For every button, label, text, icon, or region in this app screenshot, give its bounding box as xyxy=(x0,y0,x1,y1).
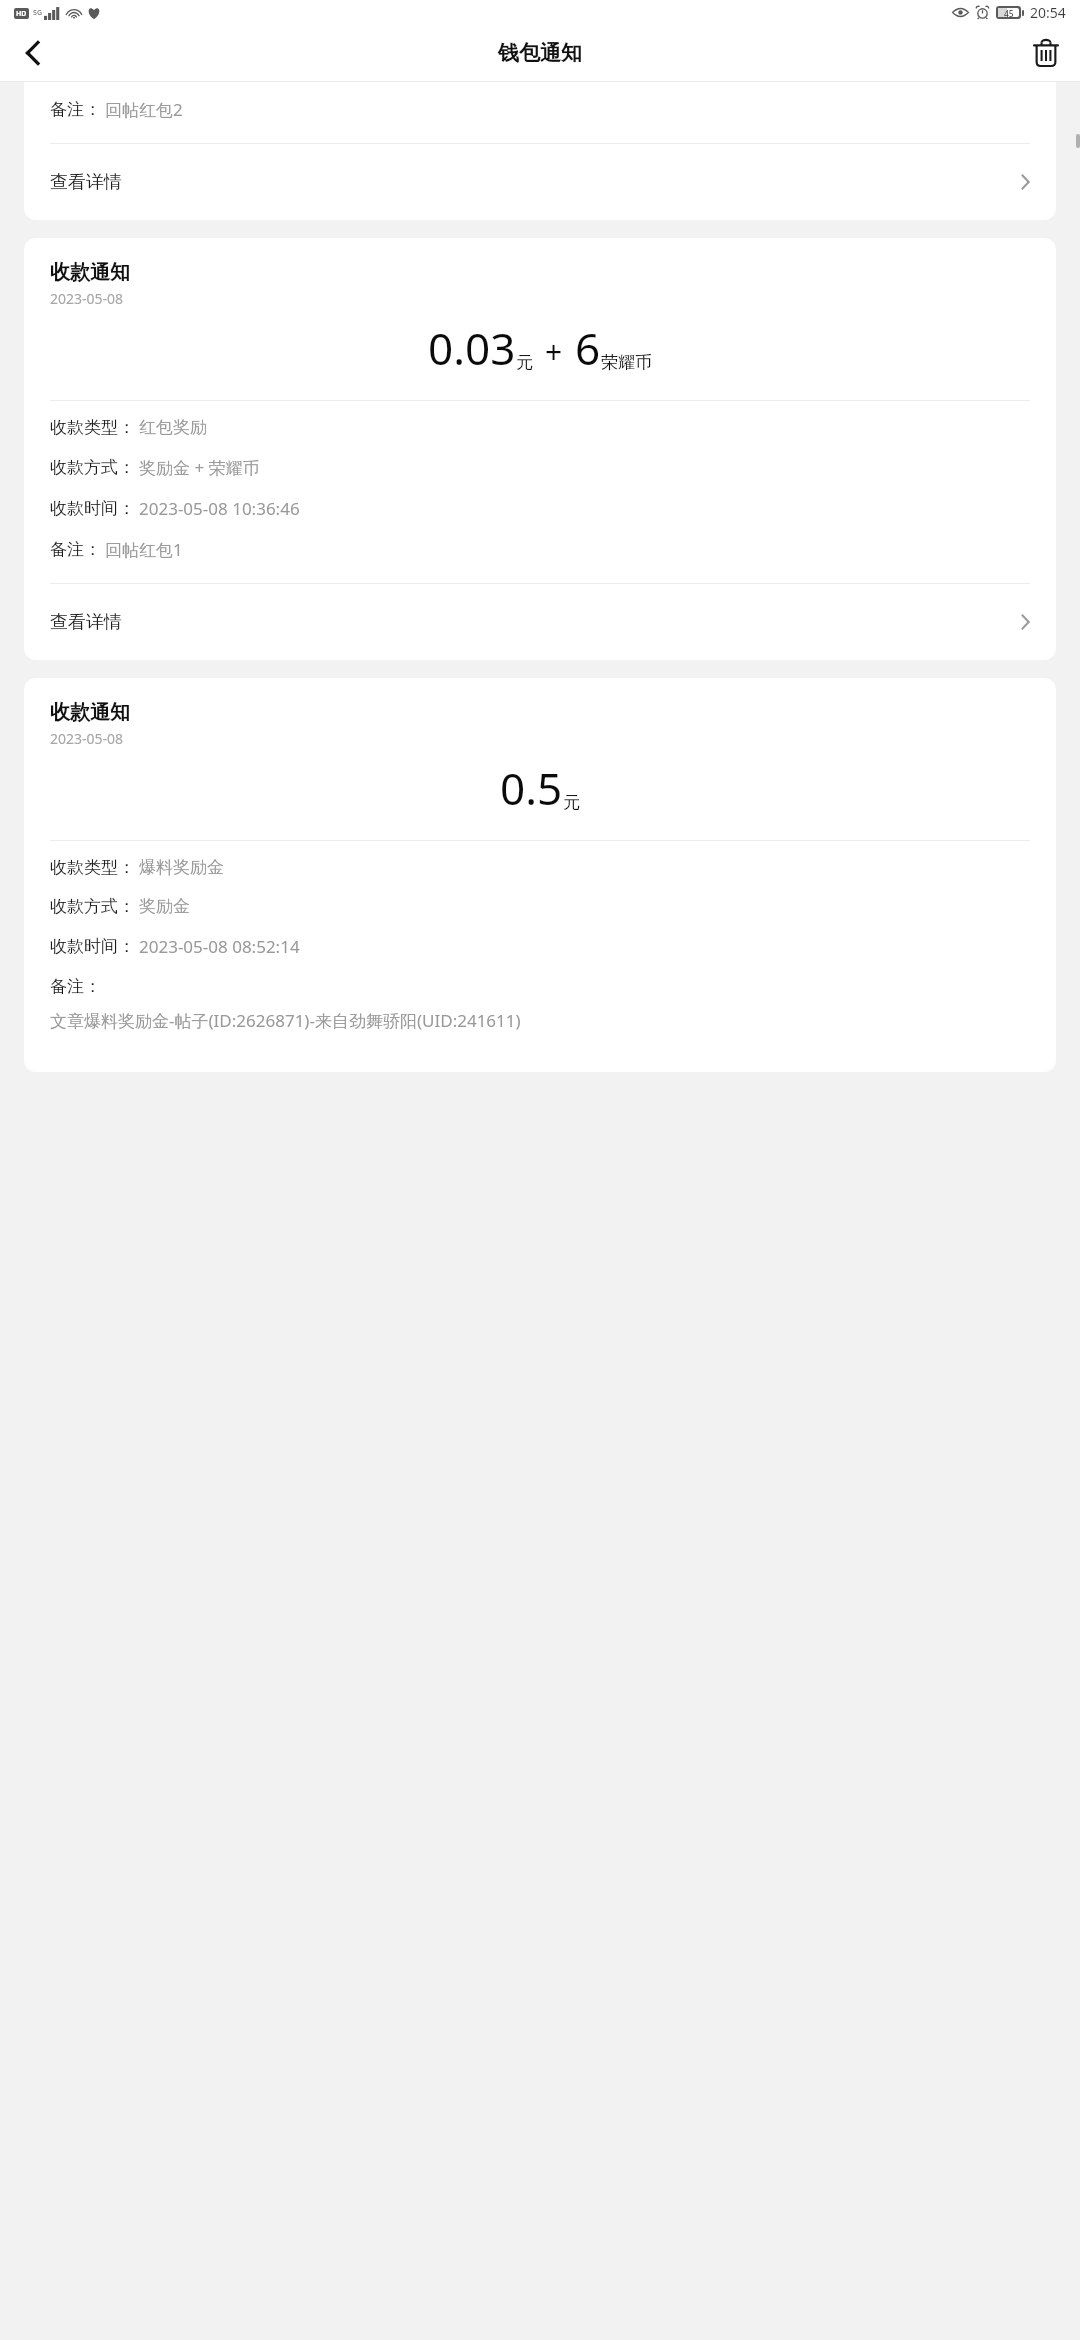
staticText: 查看详情 xyxy=(50,171,122,194)
button[interactable]: Delete xyxy=(1022,29,1070,77)
staticText: 荣耀币 xyxy=(601,352,652,373)
staticText: 6 xyxy=(575,318,601,378)
staticText: 收款时间： xyxy=(50,936,135,957)
staticText: 钱包通知 xyxy=(498,40,582,66)
staticText: 元 xyxy=(563,792,580,813)
staticText: 2023-05-08 10:36:46 xyxy=(139,497,300,520)
staticText: 备注： xyxy=(50,99,101,120)
staticText: 2023-05-08 xyxy=(50,289,124,308)
staticText: 回帖红包1 xyxy=(105,538,183,561)
staticText: 2023-05-08 xyxy=(50,729,124,748)
staticText: 查看详情 xyxy=(50,611,122,634)
staticText: 元 xyxy=(516,352,533,373)
staticText: 备注： xyxy=(50,976,101,997)
staticText: 红包奖励 xyxy=(139,417,207,438)
staticText: 收款方式： xyxy=(50,457,135,478)
staticText: 奖励金 + 荣耀币 xyxy=(139,456,260,479)
button[interactable]: 查看详情 xyxy=(24,584,1056,660)
staticText: 收款类型： xyxy=(50,857,135,878)
staticText: 奖励金 xyxy=(139,896,190,917)
staticText: 备注： xyxy=(50,539,101,560)
staticText: 文章爆料奖励金-帖子(ID:2626871)-来自劲舞骄阳(UID:241611… xyxy=(50,1009,521,1032)
staticText: 收款类型： xyxy=(50,417,135,438)
staticText: 回帖红包2 xyxy=(105,98,183,121)
staticText: + xyxy=(545,331,563,372)
staticText: 收款时间： xyxy=(50,498,135,519)
staticText: HD xyxy=(16,9,27,19)
button[interactable]: 查看详情 xyxy=(24,144,1056,220)
staticText: 5G xyxy=(33,8,43,18)
button[interactable]: Back xyxy=(8,29,56,77)
staticText: 收款方式： xyxy=(50,896,135,917)
staticText: 0.03 xyxy=(428,318,516,378)
staticText: 收款通知 xyxy=(50,260,130,285)
staticText: 2023-05-08 08:52:14 xyxy=(139,935,300,958)
staticText: 45 xyxy=(1004,8,1014,17)
staticText: 20:54 xyxy=(1030,3,1066,22)
staticText: 爆料奖励金 xyxy=(139,857,224,878)
staticText: 收款通知 xyxy=(50,700,130,725)
staticText: 0.5 xyxy=(500,758,563,818)
